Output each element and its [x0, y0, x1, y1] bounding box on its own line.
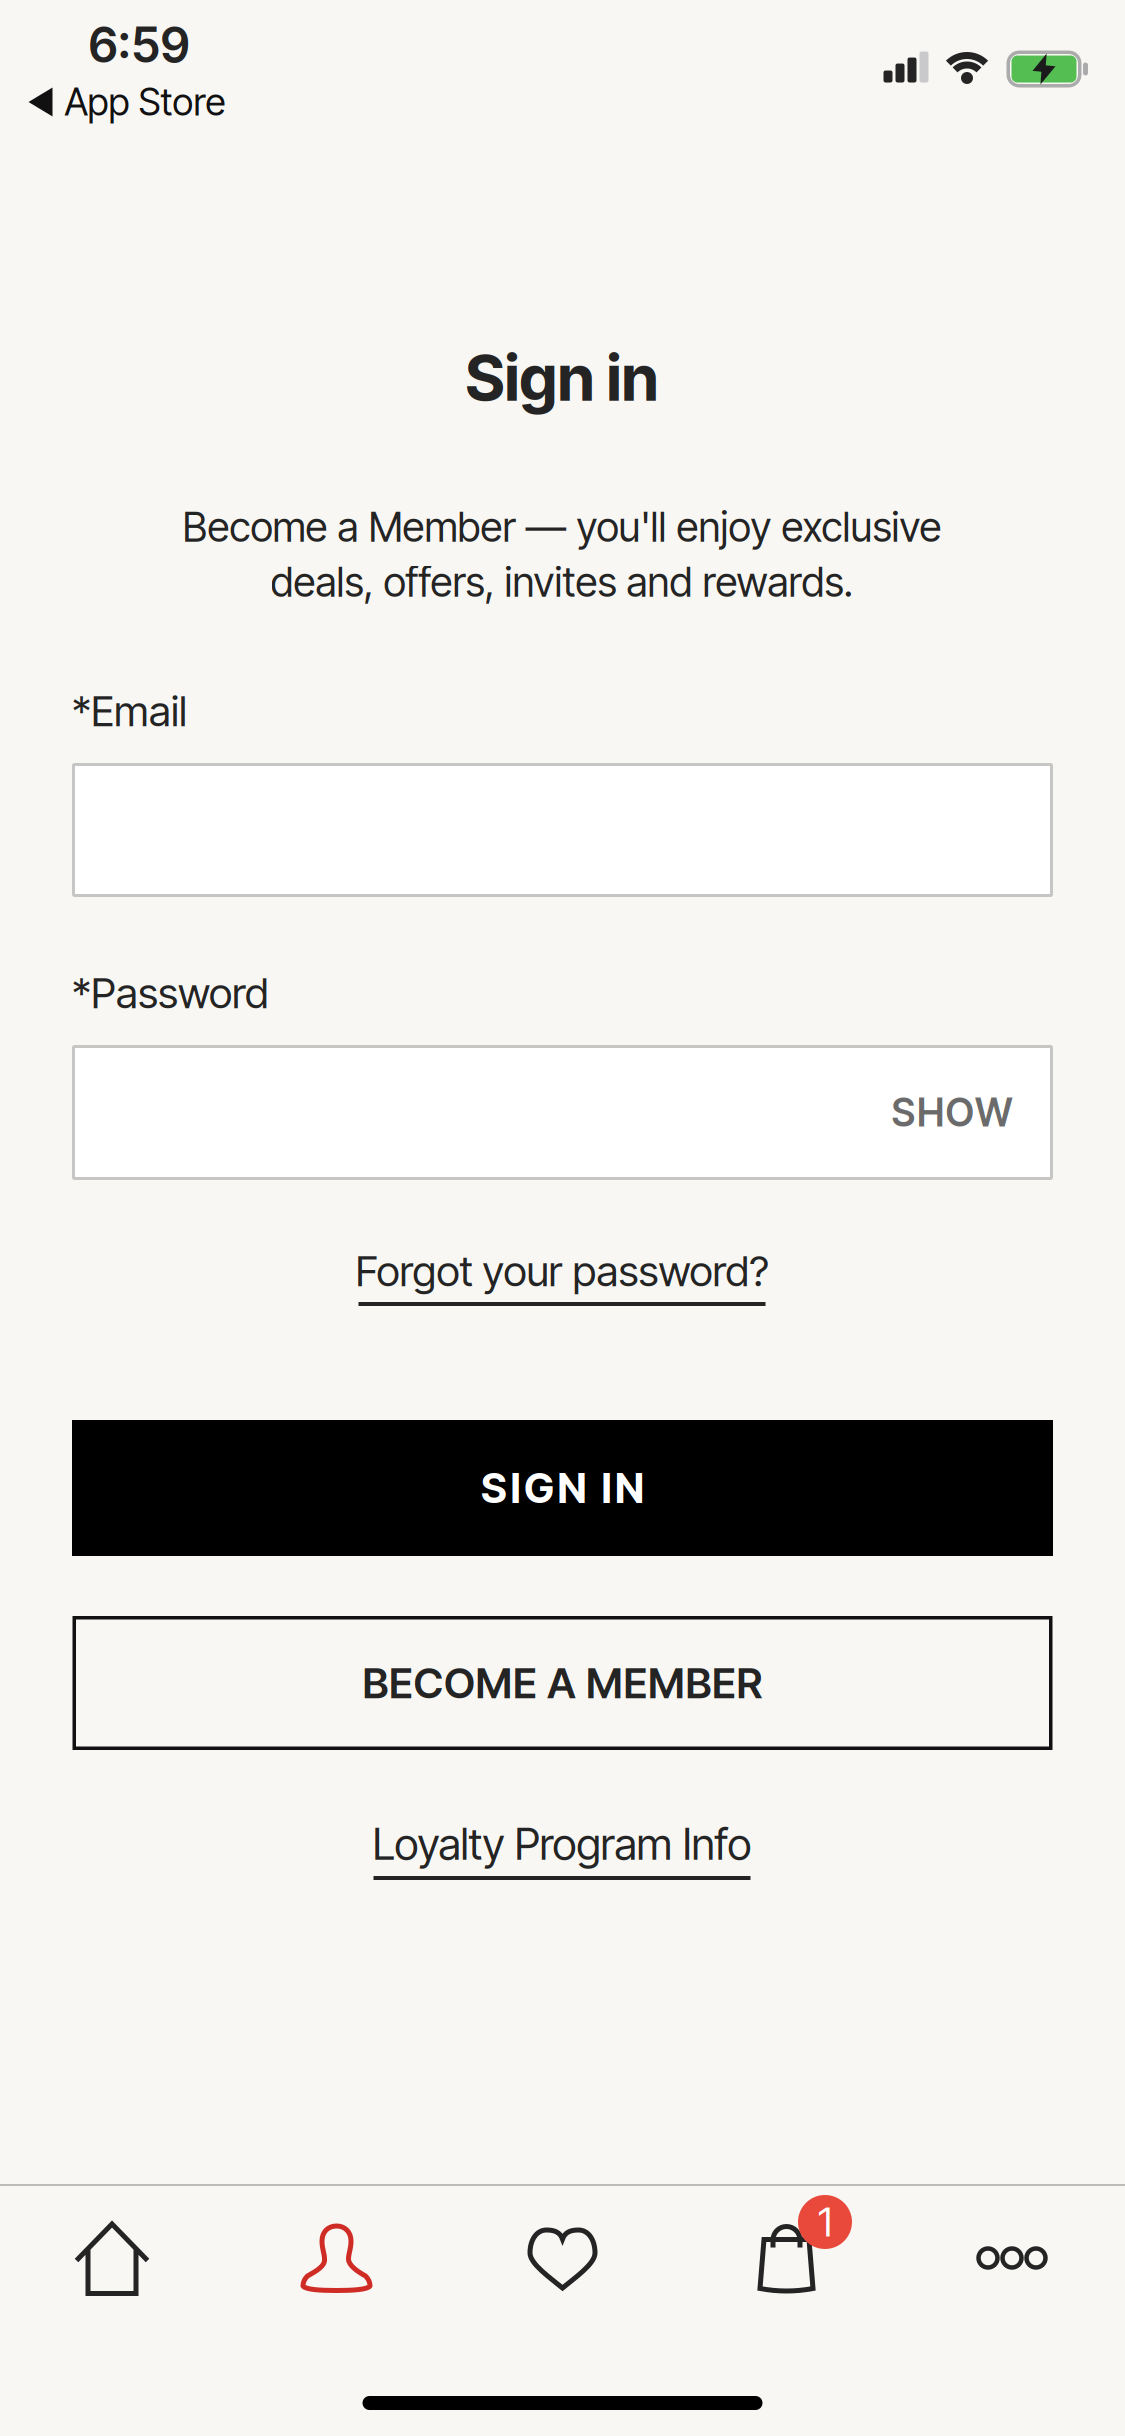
- button[interactable]: Forgot your password?: [358, 1247, 765, 1309]
- button[interactable]: Account: [225, 2186, 450, 2332]
- button[interactable]: BECOME A MEMBER: [72, 1616, 1052, 1750]
- button[interactable]: Home: [0, 2186, 225, 2332]
- staticText: SHOW: [891, 1089, 1013, 1136]
- button[interactable]: SIGN IN: [72, 1420, 1053, 1556]
- button[interactable]: Shopping bag: [675, 2186, 900, 2332]
- button[interactable]: SHOW: [891, 1089, 1053, 1136]
- staticText: 6:59: [88, 16, 189, 74]
- staticText: App Store: [64, 79, 225, 125]
- staticText: *Password: [72, 968, 269, 1018]
- staticText: Sign in: [465, 340, 658, 416]
- staticText: Forgot your password?: [355, 1246, 768, 1296]
- staticText: BECOME A MEMBER: [362, 1658, 762, 1708]
- staticText: SIGN IN: [481, 1463, 644, 1513]
- staticText: 1: [818, 2198, 832, 2246]
- staticText: *Email: [72, 686, 187, 736]
- button[interactable]: More: [900, 2186, 1125, 2332]
- button[interactable]: Loyalty Program Info: [373, 1818, 750, 1882]
- button[interactable]: Back to App Store: [28, 79, 225, 125]
- staticText: deals, offers, invites and rewards.: [270, 557, 853, 607]
- staticText: Become a Member — you'll enjoy exclusive: [182, 502, 941, 552]
- button[interactable]: Favorites: [450, 2186, 675, 2332]
- staticText: Loyalty Program Info: [372, 1818, 751, 1870]
